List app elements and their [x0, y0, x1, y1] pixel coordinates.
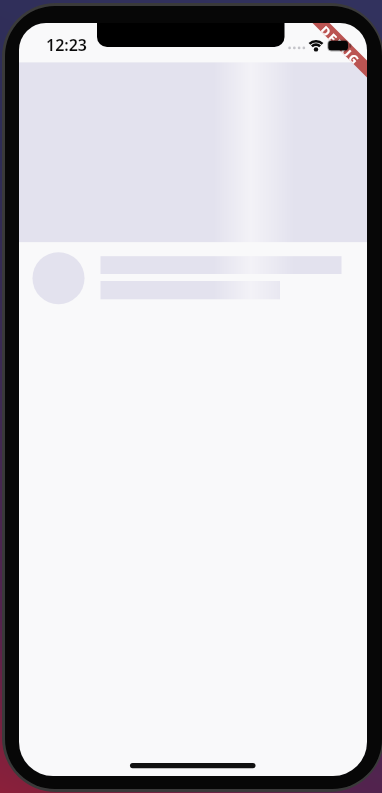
button[interactable]: [19, 248, 367, 308]
staticText: 12:23: [46, 34, 88, 56]
button[interactable]: DEBUG: [295, 23, 367, 91]
staticText: DEBUG: [320, 23, 364, 66]
